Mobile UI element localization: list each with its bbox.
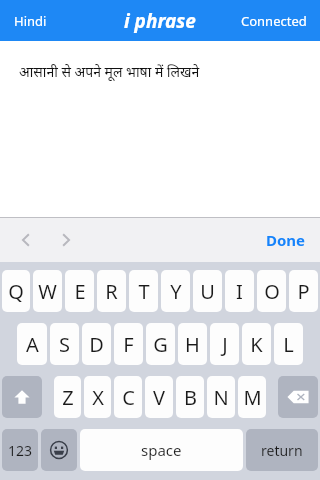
- staticText: space: [141, 440, 182, 460]
- button[interactable]: Shift: [2, 376, 42, 418]
- staticText: 123: [8, 441, 33, 460]
- button[interactable]: W: [33, 270, 62, 312]
- staticText: W: [38, 278, 57, 305]
- staticText: J: [222, 331, 228, 358]
- button[interactable]: F: [114, 323, 143, 365]
- button[interactable]: S: [50, 323, 79, 365]
- button[interactable]: A: [17, 323, 47, 365]
- staticText: Connected: [241, 12, 307, 30]
- staticText: M: [243, 384, 262, 411]
- button[interactable]: I: [225, 270, 254, 312]
- staticText: return: [261, 441, 303, 460]
- staticText: N: [213, 384, 229, 411]
- button[interactable]: Z: [54, 376, 81, 418]
- button[interactable]: B: [176, 376, 204, 418]
- staticText: X: [92, 384, 104, 411]
- button[interactable]: Y: [161, 270, 190, 312]
- staticText: I: [236, 278, 243, 305]
- button[interactable]: E: [65, 270, 94, 312]
- staticText: O: [264, 278, 280, 305]
- button[interactable]: Done: [252, 222, 320, 258]
- button[interactable]: U: [193, 270, 222, 312]
- button[interactable]: M: [238, 376, 266, 418]
- staticText: Z: [62, 384, 74, 411]
- button[interactable]: G: [146, 323, 175, 365]
- button[interactable]: C: [114, 376, 142, 418]
- staticText: आसानी से अपने मूल भाषा में लिखने: [19, 62, 200, 81]
- staticText: A: [26, 331, 39, 358]
- button[interactable]: H: [178, 323, 207, 365]
- staticText: Y: [170, 278, 182, 305]
- staticText: B: [184, 384, 197, 411]
- staticText: Hindi: [14, 12, 47, 30]
- button[interactable]: Q: [2, 270, 30, 312]
- button[interactable]: space: [80, 429, 243, 471]
- staticText: F: [123, 331, 134, 358]
- staticText: i phrase: [124, 8, 196, 34]
- button[interactable]: X: [84, 376, 111, 418]
- button[interactable]: P: [289, 270, 318, 312]
- button[interactable]: Backspace: [278, 376, 318, 418]
- button[interactable]: J: [210, 323, 239, 365]
- button[interactable]: D: [82, 323, 111, 365]
- staticText: Done: [266, 230, 306, 250]
- button[interactable]: L: [274, 323, 303, 365]
- button[interactable]: Hindi: [0, 4, 61, 38]
- button[interactable]: K: [242, 323, 271, 365]
- staticText: K: [250, 331, 263, 358]
- button[interactable]: O: [257, 270, 286, 312]
- button[interactable]: 123: [2, 429, 38, 471]
- staticText: R: [105, 278, 118, 305]
- staticText: V: [153, 384, 165, 411]
- button[interactable]: Emoji: [41, 429, 77, 471]
- button[interactable]: Previous: [8, 222, 44, 258]
- staticText: G: [153, 331, 168, 358]
- staticText: T: [138, 278, 150, 305]
- button[interactable]: Connected: [228, 4, 320, 38]
- button[interactable]: N: [207, 376, 235, 418]
- button[interactable]: R: [97, 270, 126, 312]
- staticText: L: [283, 331, 294, 358]
- button[interactable]: V: [145, 376, 173, 418]
- staticText: H: [185, 331, 200, 358]
- staticText: Q: [8, 278, 24, 305]
- button[interactable]: T: [129, 270, 158, 312]
- staticText: C: [122, 384, 135, 411]
- staticText: E: [74, 278, 86, 305]
- staticText: U: [200, 278, 215, 305]
- staticText: P: [297, 278, 310, 305]
- staticText: S: [59, 331, 70, 358]
- staticText: D: [89, 331, 104, 358]
- button[interactable]: return: [246, 429, 318, 471]
- button[interactable]: Next: [48, 222, 84, 258]
